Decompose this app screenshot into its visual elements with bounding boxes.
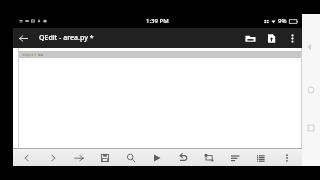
button[interactable]: Run xyxy=(144,149,170,166)
staticText: 1:39 PM xyxy=(146,17,169,25)
button[interactable]: More options xyxy=(282,28,302,48)
button[interactable]: Lines xyxy=(248,149,274,166)
button[interactable]: More xyxy=(274,149,300,166)
button[interactable]: Previous xyxy=(14,149,40,166)
button[interactable]: Save xyxy=(92,149,118,166)
button[interactable]: Indent xyxy=(66,149,92,166)
button[interactable]: Back xyxy=(302,38,320,56)
button[interactable]: Home xyxy=(302,81,320,99)
button[interactable]: Format xyxy=(222,149,248,166)
button[interactable]: Save file xyxy=(261,28,282,48)
button[interactable]: Undo xyxy=(170,149,196,166)
button[interactable]: Select all xyxy=(196,149,222,166)
staticText: 9% xyxy=(278,17,287,25)
staticText: ma xyxy=(38,52,43,57)
button[interactable]: Navigate up xyxy=(13,28,33,48)
button[interactable]: Next xyxy=(40,149,66,166)
staticText: QEdit - area.py * xyxy=(39,33,94,43)
button[interactable]: Recent apps xyxy=(302,119,320,137)
button[interactable]: Open file xyxy=(240,28,261,48)
staticText: import xyxy=(22,52,37,57)
button[interactable]: Find xyxy=(118,149,144,166)
